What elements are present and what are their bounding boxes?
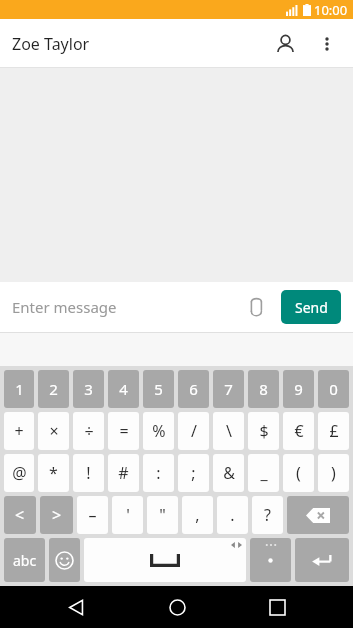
staticText: ? [264, 504, 271, 526]
staticText: 5 [154, 379, 163, 399]
staticText: ) [331, 462, 336, 484]
button[interactable]: 9 [283, 370, 314, 408]
button[interactable]: ' [112, 496, 143, 534]
button[interactable]: > [40, 496, 73, 534]
staticText: 6 [189, 379, 198, 399]
button[interactable]: Back [52, 586, 100, 628]
staticText: : [156, 462, 161, 484]
button[interactable]: $ [248, 412, 279, 450]
button[interactable]: 7 [213, 370, 244, 408]
button[interactable]: 5 [143, 370, 174, 408]
staticText: _ [260, 462, 268, 484]
button[interactable]: abc [4, 538, 45, 582]
staticText: = [119, 420, 129, 442]
button[interactable]: 3 [73, 370, 104, 408]
button[interactable]: £ [318, 412, 349, 450]
button[interactable]: Enter [295, 538, 349, 582]
button[interactable]: / [178, 412, 209, 450]
staticText: ; [191, 462, 196, 484]
button[interactable]: ; [178, 454, 209, 492]
button[interactable]: ) [318, 454, 349, 492]
button[interactable]: 2 [38, 370, 69, 408]
button[interactable]: Space [84, 538, 246, 582]
staticText: 9 [294, 379, 303, 399]
staticText: Zoe Taylor [12, 33, 90, 55]
button[interactable]: : [143, 454, 174, 492]
button[interactable]: Period [250, 538, 291, 582]
staticText: £ [329, 420, 339, 442]
staticText: ( [296, 462, 301, 484]
button[interactable]: \ [213, 412, 244, 450]
button[interactable]: Home [153, 586, 201, 628]
button[interactable]: . [217, 496, 248, 534]
button[interactable]: * [38, 454, 69, 492]
button[interactable]: ( [283, 454, 314, 492]
button[interactable]: Backspace [287, 496, 349, 534]
staticText: Enter message [12, 297, 117, 317]
staticText: 7 [224, 379, 233, 399]
staticText: 4 [119, 379, 128, 399]
button[interactable]: , [182, 496, 213, 534]
button[interactable]: Emoji [49, 538, 80, 582]
staticText: . [230, 504, 235, 526]
button[interactable]: Send [281, 290, 341, 324]
staticText: ! [86, 462, 91, 484]
staticText: × [49, 420, 59, 442]
staticText: $ [259, 420, 269, 442]
button[interactable]: 6 [178, 370, 209, 408]
staticText: & [223, 462, 235, 484]
button[interactable]: More options [307, 24, 347, 64]
button[interactable]: Enter message [12, 297, 239, 317]
staticText: Send [295, 298, 328, 317]
button[interactable]: ? [252, 496, 283, 534]
staticText: " [159, 504, 166, 526]
staticText: abc [13, 551, 37, 570]
button[interactable]: " [147, 496, 178, 534]
staticText: * [49, 462, 58, 484]
button[interactable]: 8 [248, 370, 279, 408]
button[interactable]: ! [73, 454, 104, 492]
button[interactable]: _ [248, 454, 279, 492]
button[interactable]: & [213, 454, 244, 492]
staticText: # [118, 462, 129, 484]
button[interactable]: < [4, 496, 36, 534]
staticText: 10:00 [314, 1, 348, 19]
staticText: 0 [329, 379, 338, 399]
staticText: € [294, 420, 304, 442]
button[interactable]: 0 [318, 370, 349, 408]
staticText: < [15, 504, 25, 526]
button[interactable]: % [143, 412, 174, 450]
staticText: 1 [15, 379, 24, 399]
staticText: > [52, 504, 62, 526]
staticText: 3 [84, 379, 93, 399]
button[interactable]: ÷ [73, 412, 104, 450]
button[interactable]: = [108, 412, 139, 450]
staticText: / [191, 420, 197, 442]
staticText: ÷ [84, 420, 94, 442]
staticText: 2 [49, 379, 58, 399]
button[interactable]: 4 [108, 370, 139, 408]
button[interactable]: Contact [263, 22, 307, 66]
button[interactable]: – [77, 496, 108, 534]
staticText: – [88, 504, 97, 526]
staticText: @ [12, 462, 27, 484]
button[interactable]: # [108, 454, 139, 492]
staticText: + [14, 420, 24, 442]
button[interactable]: 1 [4, 370, 34, 408]
staticText: 8 [259, 379, 268, 399]
button[interactable]: € [283, 412, 314, 450]
staticText: \ [226, 420, 232, 442]
button[interactable]: Attach [239, 289, 275, 325]
staticText: ' [126, 504, 130, 526]
button[interactable]: @ [4, 454, 34, 492]
button[interactable]: × [38, 412, 69, 450]
staticText: % [152, 420, 166, 442]
button[interactable]: + [4, 412, 34, 450]
button[interactable]: Recents [253, 586, 301, 628]
staticText: , [195, 504, 200, 526]
